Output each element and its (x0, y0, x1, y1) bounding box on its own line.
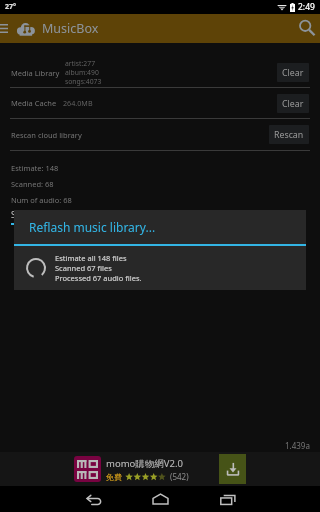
staticText: 27° (5, 2, 16, 12)
staticText: Processed 67 audio files. (55, 273, 142, 283)
staticText: artist:277 (65, 59, 96, 68)
staticText: Rescan cloud library (11, 130, 82, 140)
staticText: songs:4073 (65, 77, 102, 86)
staticText: 免費 (106, 472, 122, 482)
button[interactable]: Clear (277, 63, 309, 82)
button[interactable]: Rescan (269, 125, 309, 144)
staticText: Media Cache (11, 98, 57, 108)
staticText: 2:49 (298, 1, 315, 13)
button[interactable]: Search (294, 14, 320, 43)
button[interactable]: Home (127, 486, 194, 512)
button[interactable]: Recent apps (194, 486, 261, 512)
staticText: 1.439a (285, 440, 310, 451)
button[interactable]: Media Library (0, 58, 320, 87)
staticText: Media Library (11, 68, 60, 78)
button[interactable]: Clear (277, 94, 309, 113)
staticText: album:490 (65, 68, 99, 77)
staticText: Clear (282, 67, 304, 79)
staticText: Reflash music library... (29, 219, 156, 235)
staticText: Rescan (274, 129, 304, 141)
button[interactable]: Install (219, 454, 246, 484)
staticText: Estimate all 148 files (55, 253, 127, 263)
staticText: Estimate: 148 (11, 163, 59, 173)
staticText: (542) (170, 471, 189, 482)
staticText: Num of audio: 68 (11, 195, 72, 205)
staticText: Scanning /storage/sdcard0/Music (11, 209, 145, 221)
staticText: momo購物網V2.0 (106, 457, 183, 470)
staticText: MusicBox (42, 20, 99, 37)
staticText: Clear (282, 98, 304, 110)
button[interactable]: Media Cache (0, 88, 320, 118)
button[interactable]: Rescan cloud library (0, 119, 320, 150)
button[interactable]: Back (60, 486, 127, 512)
button[interactable]: momo購物網V2.0 (0, 452, 320, 486)
staticText: 264.0MB (63, 98, 93, 108)
button[interactable]: Navigation menu (0, 14, 12, 43)
staticText: Scanned: 68 (11, 179, 54, 189)
staticText: Scanned 67 files (55, 263, 112, 273)
